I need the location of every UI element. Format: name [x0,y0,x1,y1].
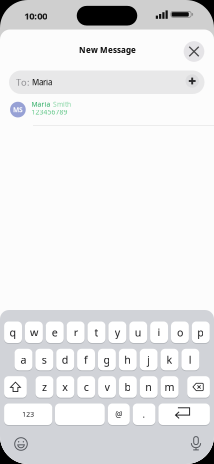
button[interactable]: z [35,376,53,398]
button[interactable]: m [161,376,179,398]
button[interactable]: Close [184,41,204,62]
button[interactable]: space [55,403,105,425]
button[interactable]: Delete [187,376,210,398]
staticText: o [177,325,183,339]
staticText: h [124,352,131,367]
button[interactable]: j [140,349,158,370]
button[interactable]: h [119,349,137,370]
button[interactable]: u [129,321,147,343]
staticText: @ [115,409,122,419]
staticText: To: [16,76,30,88]
button[interactable]: w [25,321,43,343]
staticText: 10:00 [24,10,47,22]
staticText: z [42,380,47,394]
button[interactable]: r [67,321,85,343]
button[interactable]: n [140,376,158,398]
button[interactable]: 123 [4,403,52,425]
staticText: 123456789 [32,108,68,116]
button[interactable]: o [171,321,189,343]
staticText: c [84,380,89,394]
staticText: New Message [79,45,136,55]
staticText: n [145,380,152,394]
staticText: u [135,325,142,339]
button[interactable]: . [133,403,155,425]
staticText: b [124,380,131,394]
staticText: f [84,352,88,367]
button[interactable]: i [150,321,168,343]
staticText: v [104,380,109,394]
button[interactable]: b [119,376,137,398]
staticText: e [52,325,58,339]
button[interactable]: p [192,321,210,343]
staticText: d [62,352,69,367]
button[interactable]: MS [0,96,214,124]
button[interactable]: y [108,321,126,343]
staticText: 123 [22,410,34,419]
button[interactable]: t [87,321,105,343]
staticText: s [42,352,47,367]
staticText: a [20,352,26,367]
button[interactable]: c [77,376,95,398]
staticText: Maria [32,100,51,109]
staticText: i [158,325,161,339]
staticText: . [143,408,146,420]
staticText: j [147,352,150,367]
staticText: p [197,325,204,339]
button[interactable]: s [35,349,53,370]
staticText: y [115,325,120,339]
staticText: Smith [53,100,71,109]
staticText: MS [13,105,23,114]
button[interactable]: d [56,349,74,370]
staticText: t [94,325,98,339]
button[interactable]: f [77,349,95,370]
staticText: l [189,352,192,367]
staticText: q [9,325,16,339]
button[interactable]: g [98,349,116,370]
button[interactable]: e [46,321,64,343]
button[interactable]: l [181,349,199,370]
button[interactable]: @ [108,403,130,425]
button[interactable]: Shift [4,376,27,398]
button[interactable]: q [4,321,22,343]
button[interactable]: To: Maria [9,70,204,94]
staticText: x [62,380,68,394]
staticText: m [165,380,175,394]
button[interactable]: Emoji [14,437,28,451]
button[interactable]: Dictation [188,436,203,451]
button[interactable]: Add contact [185,74,199,88]
staticText: w [30,325,38,339]
button[interactable]: k [160,349,178,370]
button[interactable]: v [98,376,116,398]
button[interactable]: a [14,349,32,370]
button[interactable]: Return [158,403,210,425]
staticText: g [103,352,110,367]
staticText: k [166,352,172,367]
staticText: Maria [32,77,52,87]
staticText: r [74,325,78,339]
button[interactable]: x [56,376,74,398]
